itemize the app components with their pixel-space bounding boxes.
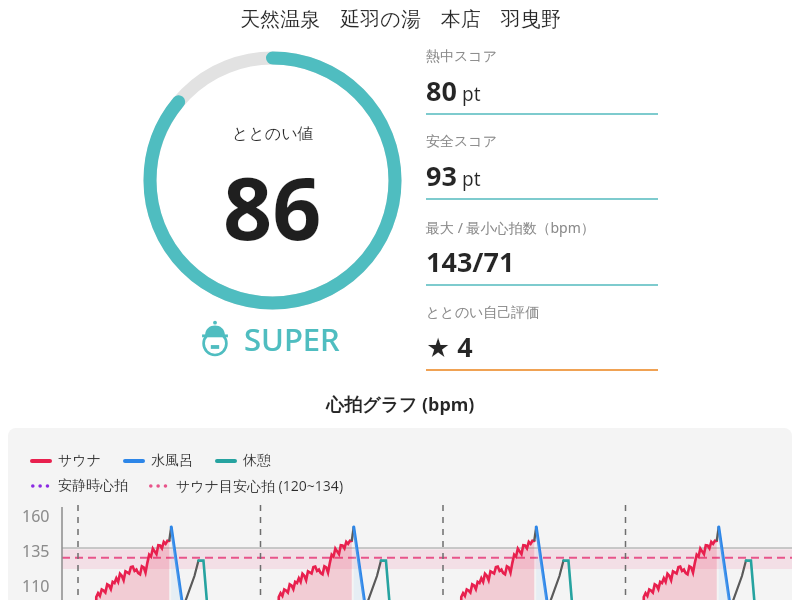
button[interactable]: 最大 / 最小心拍数（bpm） <box>426 218 658 304</box>
staticText: 86 <box>223 148 322 265</box>
button[interactable]: ととのい値 <box>140 46 405 311</box>
staticText: 93 <box>426 157 457 194</box>
staticText: サウナ目安心拍 (120~134) <box>176 476 344 495</box>
staticText: 80 <box>426 72 457 109</box>
staticText: SUPER <box>244 318 340 360</box>
staticText: pt <box>457 81 481 107</box>
staticText: 最大 / 最小心拍数（bpm） <box>426 218 595 237</box>
button[interactable]: 安全スコア <box>426 133 658 218</box>
staticText: 天然温泉 延羽の湯 本店 羽曳野 <box>240 5 561 32</box>
staticText: pt <box>457 166 481 192</box>
button[interactable]: ととのい自己評価 <box>426 304 658 389</box>
button[interactable]: SUPER rank <box>196 318 340 360</box>
staticText: 安静時心拍 <box>58 477 128 495</box>
staticText: 安全スコア <box>426 133 497 151</box>
button[interactable]: 熱中スコア <box>426 48 658 133</box>
staticText: 143/71 <box>426 243 515 280</box>
staticText: ★ 4 <box>426 328 473 365</box>
staticText: 心拍グラフ (bpm) <box>326 392 475 417</box>
staticText: ととのい値 <box>232 124 314 144</box>
staticText: 160 <box>22 505 50 527</box>
staticText: 熱中スコア <box>426 48 497 66</box>
staticText: ととのい自己評価 <box>426 304 540 322</box>
staticText: 水風呂 <box>151 452 193 470</box>
staticText: サウナ <box>58 452 101 470</box>
button[interactable]: サウナ <box>8 428 792 600</box>
staticText: 110 <box>22 575 50 597</box>
button[interactable]: 心拍グラフ (bpm) <box>0 392 800 417</box>
staticText: 休憩 <box>243 452 271 470</box>
button[interactable]: 天然温泉 延羽の湯 本店 羽曳野 <box>0 0 800 36</box>
staticText: 135 <box>22 540 50 562</box>
other: SUPER rank <box>196 320 234 358</box>
